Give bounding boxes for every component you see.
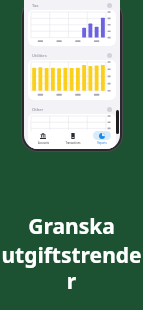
button[interactable]: Utilities [28,50,116,100]
staticText: Tax [32,3,39,8]
button[interactable]: Other [28,104,116,149]
staticText: Reports [97,141,107,144]
staticText: Granska [28,212,115,241]
button[interactable]: Tax [28,0,116,46]
button[interactable]: Accounts [28,130,58,145]
button[interactable]: Reports [87,130,116,145]
button[interactable]: Transactions [58,130,87,145]
staticText: Other [32,107,44,112]
staticText: Accounts [38,141,49,144]
staticText: Transactions [65,141,81,144]
staticText: utgiftstrender [0,241,143,296]
staticText: Utilities [32,53,47,58]
